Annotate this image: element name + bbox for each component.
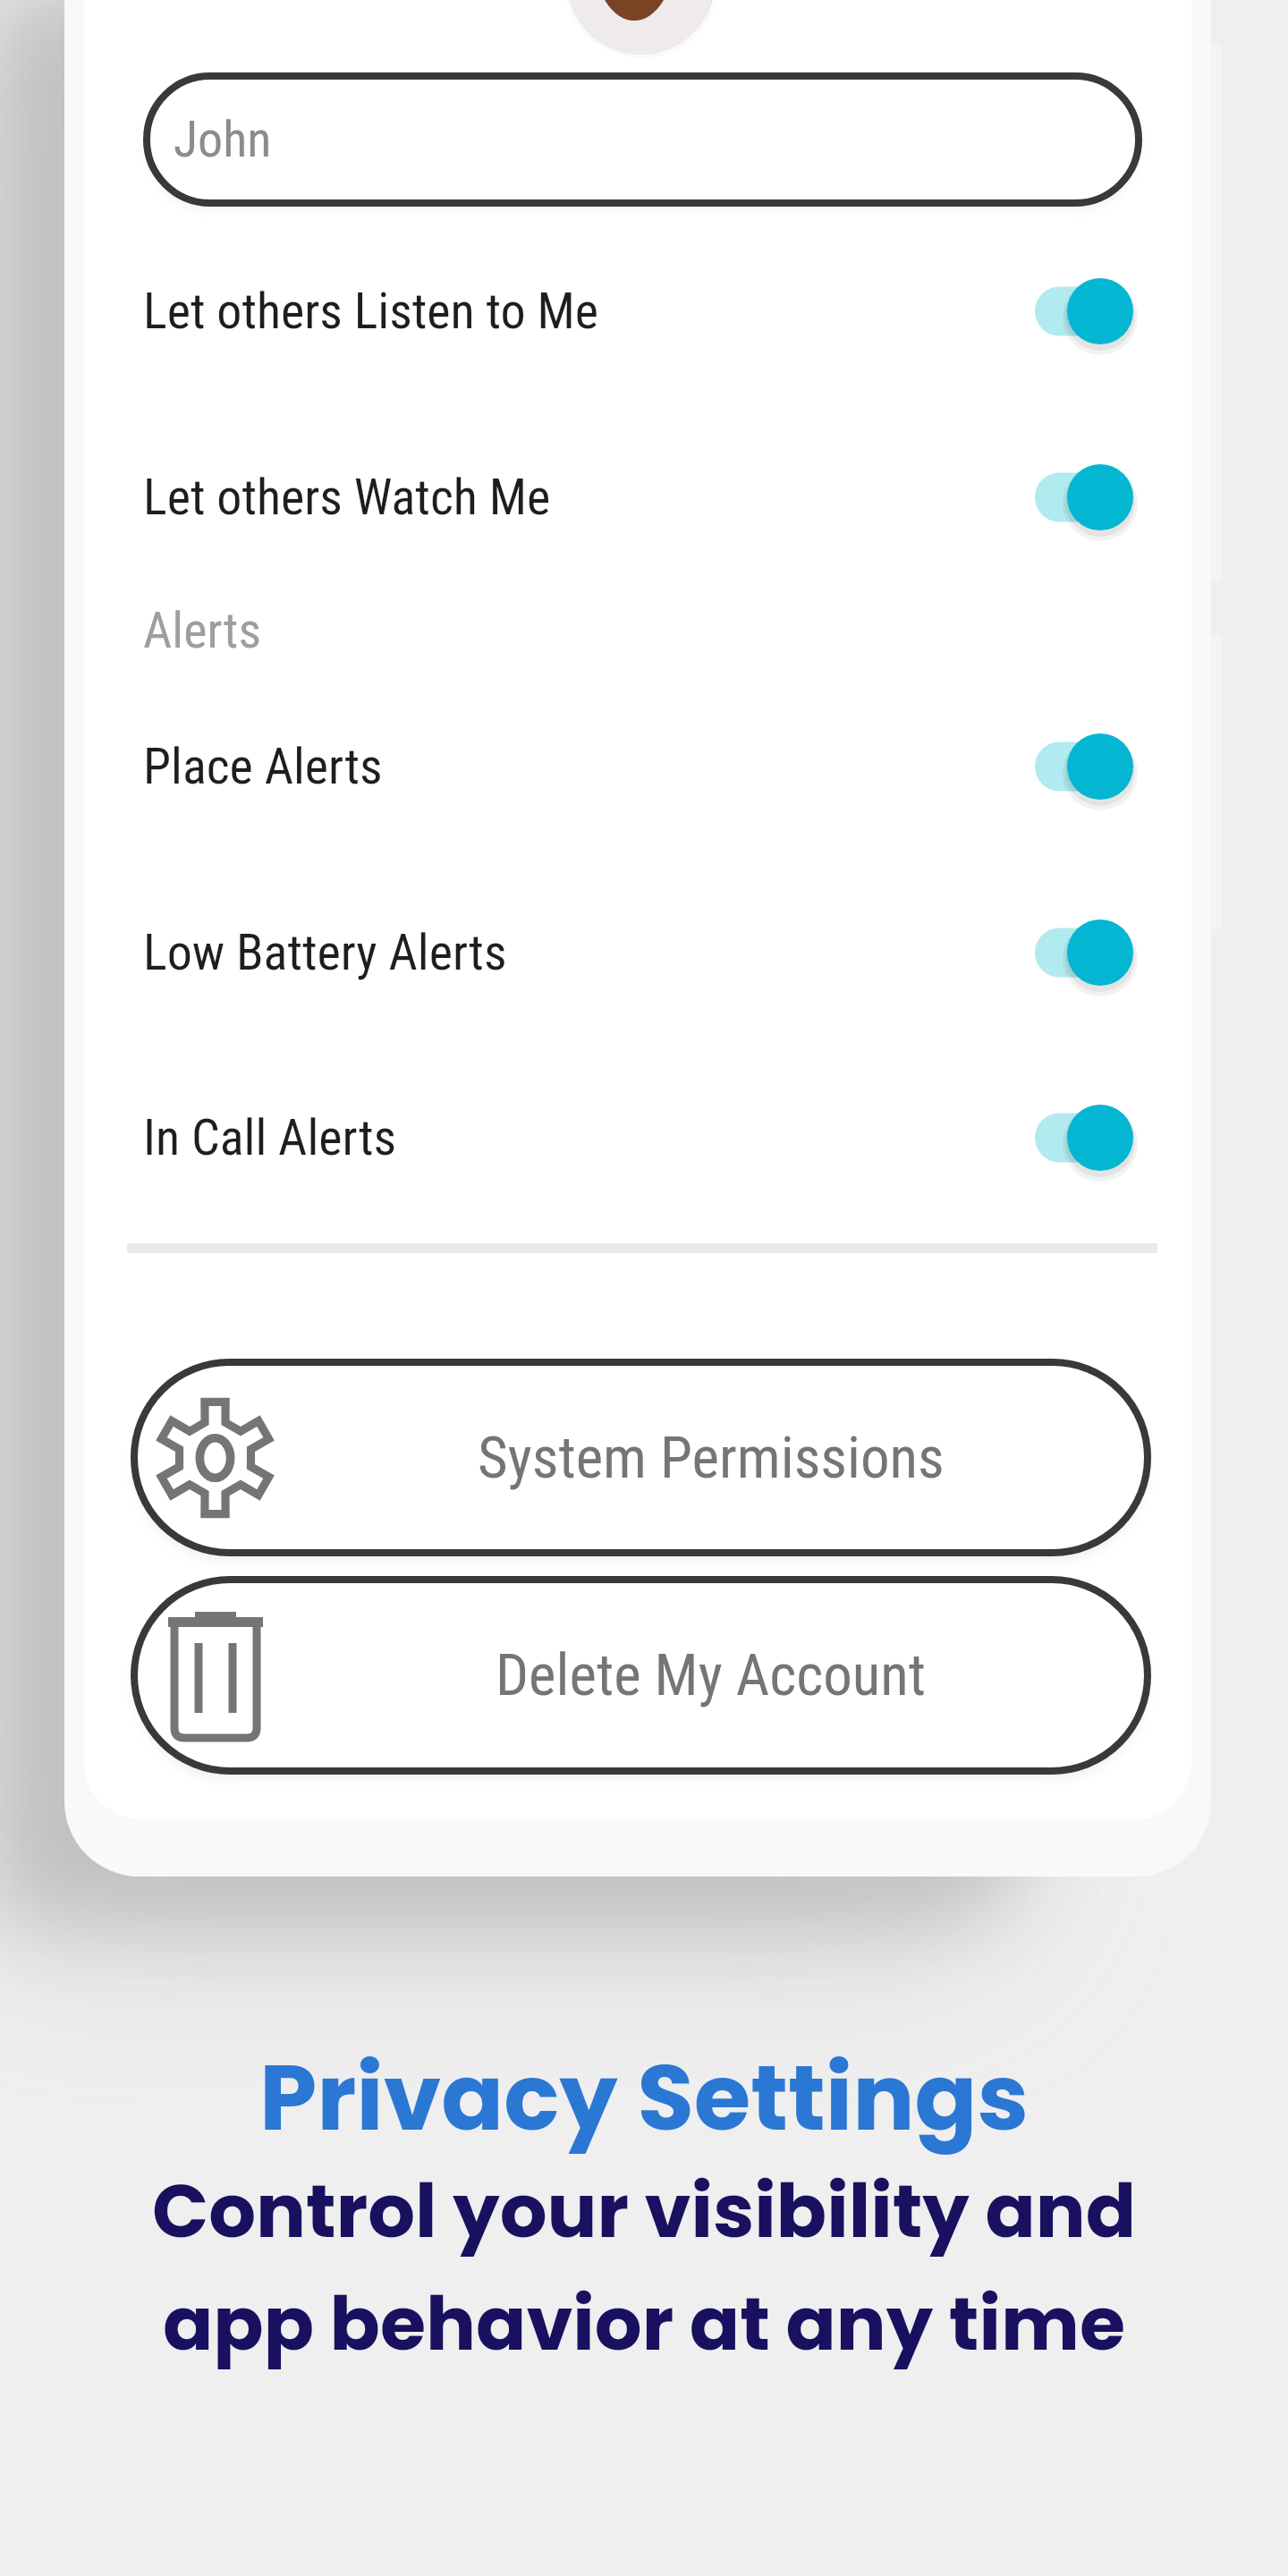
- staticText: Alerts: [143, 601, 261, 660]
- button[interactable]: Profile picture: [567, 0, 715, 55]
- button[interactable]: System Permissions: [131, 1359, 1151, 1556]
- button[interactable]: Toggle setting: [1035, 267, 1142, 356]
- staticText: Let others Watch Me: [143, 468, 551, 527]
- staticText: System Permissions: [478, 1424, 945, 1492]
- staticText: Place Alerts: [143, 737, 383, 796]
- button[interactable]: Let others Watch Me: [143, 435, 1142, 560]
- staticText: John: [174, 110, 272, 169]
- staticText: Delete My Account: [496, 1641, 926, 1709]
- button[interactable]: Low Battery Alerts: [143, 890, 1142, 1015]
- button[interactable]: Toggle setting: [1035, 722, 1142, 811]
- button[interactable]: In Call Alerts: [143, 1075, 1142, 1200]
- button[interactable]: Toggle setting: [1035, 453, 1142, 542]
- staticText: Let others Listen to Me: [143, 282, 599, 341]
- staticText: In Call Alerts: [143, 1108, 397, 1167]
- button[interactable]: John: [143, 72, 1142, 207]
- staticText: Low Battery Alerts: [143, 923, 507, 982]
- button[interactable]: Delete My Account: [131, 1576, 1151, 1775]
- staticText: Privacy Settings: [0, 2033, 1288, 2162]
- button[interactable]: Toggle setting: [1035, 1093, 1142, 1182]
- button[interactable]: Let others Listen to Me: [143, 249, 1142, 374]
- button[interactable]: Place Alerts: [143, 704, 1142, 829]
- button[interactable]: Toggle setting: [1035, 908, 1142, 997]
- staticText: Control your visibility and app behavior…: [0, 2159, 1288, 2376]
